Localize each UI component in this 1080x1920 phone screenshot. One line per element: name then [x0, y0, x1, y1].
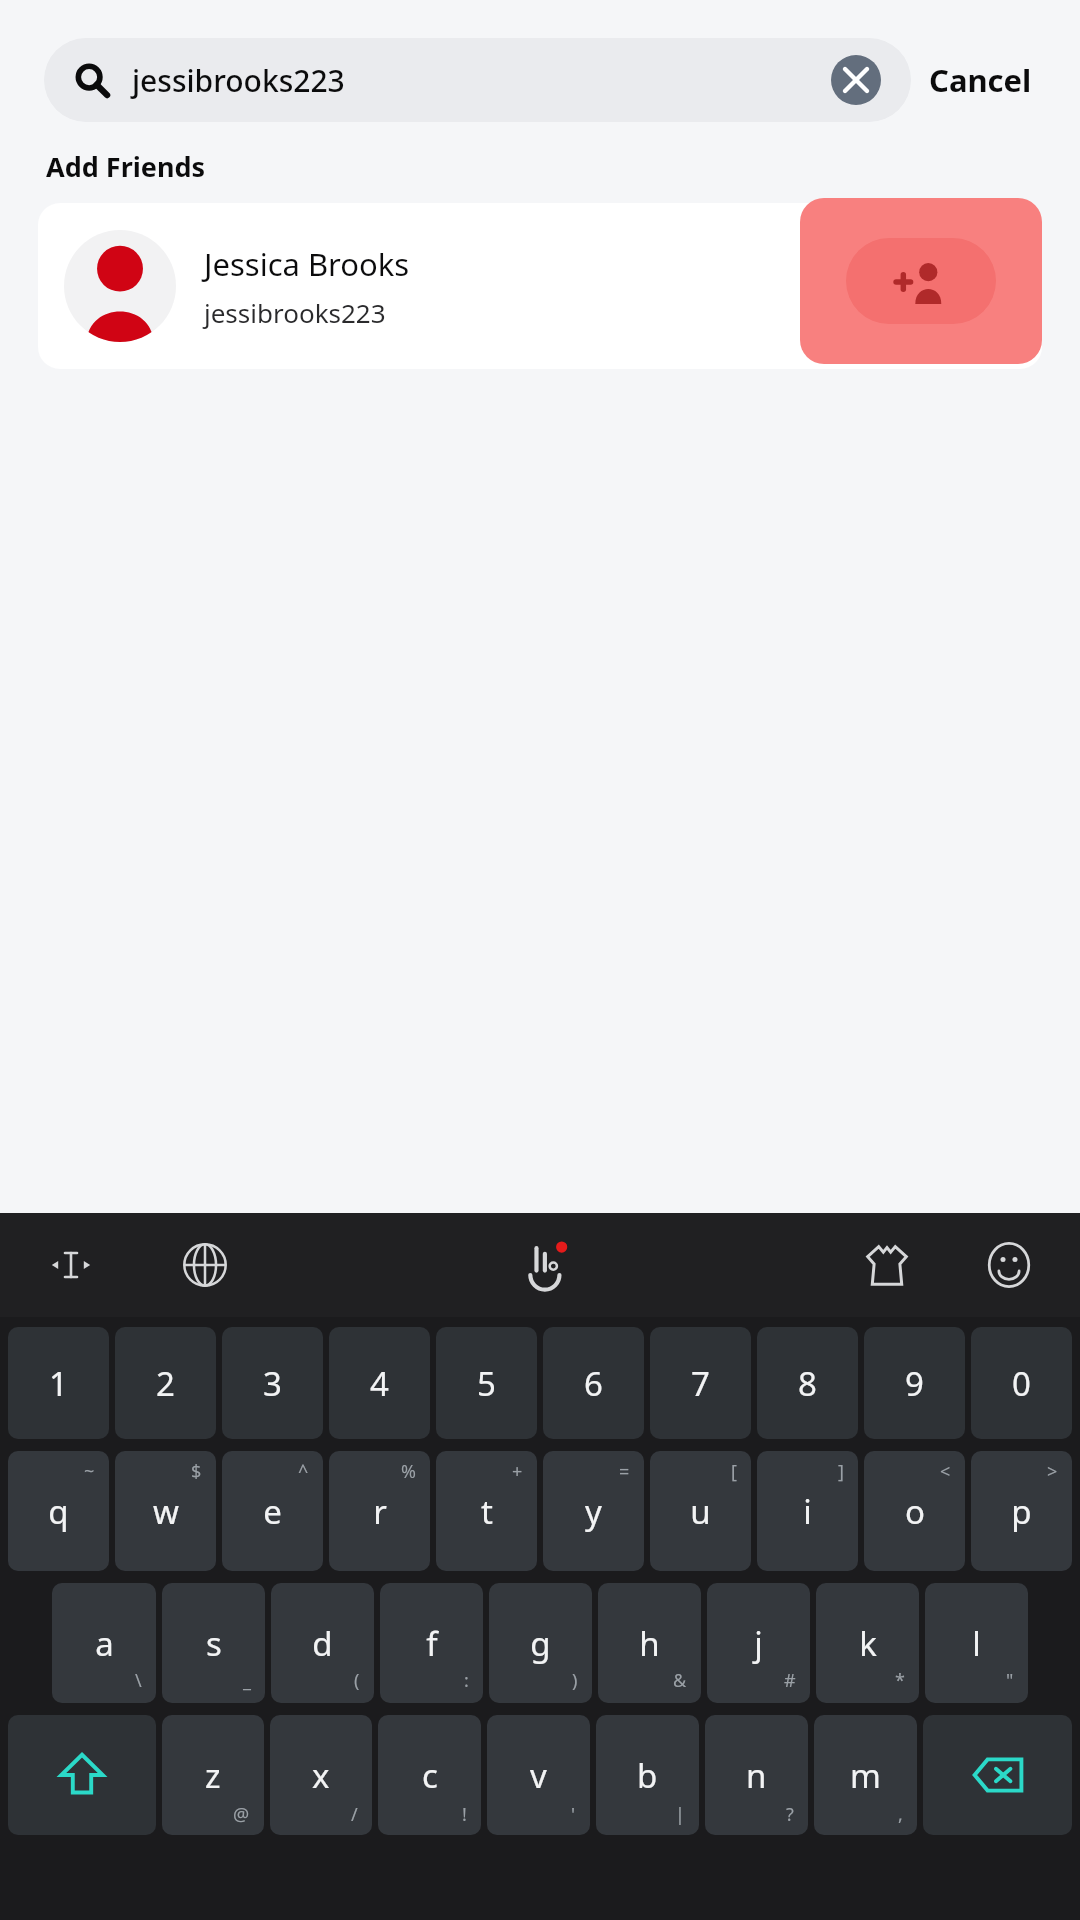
- staticText: ": [1006, 1668, 1014, 1693]
- button[interactable]: Gestures: [509, 1228, 583, 1302]
- staticText: /: [351, 1802, 358, 1827]
- staticText: 6: [584, 1361, 603, 1406]
- staticText: jessibrooks223: [132, 60, 831, 101]
- staticText: 9: [905, 1361, 924, 1406]
- button[interactable]: Backspace: [923, 1715, 1072, 1835]
- button[interactable]: q: [8, 1451, 109, 1571]
- button[interactable]: 7: [650, 1327, 751, 1439]
- staticText: *: [895, 1668, 905, 1693]
- button[interactable]: Emoji: [972, 1228, 1046, 1302]
- staticText: ?: [786, 1802, 794, 1827]
- staticText: 4: [370, 1361, 389, 1406]
- button[interactable]: Language: [168, 1228, 242, 1302]
- staticText: z: [205, 1753, 221, 1798]
- button[interactable]: k: [816, 1583, 919, 1703]
- button[interactable]: 9: [864, 1327, 965, 1439]
- staticText: jessibrooks223: [204, 295, 386, 330]
- button[interactable]: 2: [115, 1327, 216, 1439]
- button[interactable]: o: [864, 1451, 965, 1571]
- button[interactable]: x: [270, 1715, 372, 1835]
- staticText: g: [530, 1621, 551, 1666]
- staticText: m: [850, 1753, 881, 1798]
- button[interactable]: Cursor control: [34, 1228, 108, 1302]
- button[interactable]: t: [436, 1451, 537, 1571]
- button[interactable]: 0: [971, 1327, 1072, 1439]
- staticText: r: [373, 1489, 387, 1534]
- button[interactable]: u: [650, 1451, 751, 1571]
- staticText: :: [464, 1668, 469, 1693]
- button[interactable]: Shift: [8, 1715, 156, 1835]
- staticText: &: [673, 1668, 687, 1693]
- button[interactable]: m: [814, 1715, 917, 1835]
- button[interactable]: f: [380, 1583, 483, 1703]
- button[interactable]: z: [162, 1715, 264, 1835]
- staticText: f: [426, 1621, 438, 1666]
- staticText: 2: [156, 1361, 175, 1406]
- staticText: ): [572, 1668, 578, 1693]
- button[interactable]: s: [162, 1583, 265, 1703]
- button[interactable]: g: [489, 1583, 592, 1703]
- button[interactable]: v: [487, 1715, 590, 1835]
- staticText: (: [354, 1668, 360, 1693]
- button[interactable]: Cancel: [911, 47, 1050, 113]
- button[interactable]: j: [707, 1583, 810, 1703]
- staticText: Add Friends: [46, 148, 206, 185]
- staticText: Jessica Brooks: [204, 243, 410, 285]
- staticText: @: [233, 1802, 250, 1827]
- button[interactable]: h: [598, 1583, 701, 1703]
- staticText: b: [637, 1753, 658, 1798]
- button[interactable]: Add friend: [800, 198, 1042, 364]
- staticText: l: [972, 1621, 981, 1666]
- staticText: c: [422, 1753, 438, 1798]
- button[interactable]: c: [378, 1715, 481, 1835]
- staticText: d: [312, 1621, 333, 1666]
- staticText: j: [754, 1621, 763, 1666]
- staticText: |: [675, 1802, 685, 1827]
- staticText: x: [312, 1753, 330, 1798]
- staticText: w: [153, 1489, 179, 1534]
- staticText: e: [263, 1489, 282, 1534]
- staticText: _: [243, 1668, 251, 1693]
- button[interactable]: 1: [8, 1327, 109, 1439]
- staticText: k: [859, 1621, 877, 1666]
- button[interactable]: r: [329, 1451, 430, 1571]
- staticText: ~: [84, 1459, 95, 1484]
- button[interactable]: e: [222, 1451, 323, 1571]
- staticText: o: [905, 1489, 925, 1534]
- staticText: u: [690, 1489, 711, 1534]
- staticText: i: [803, 1489, 812, 1534]
- staticText: ,: [898, 1802, 903, 1827]
- staticText: $: [191, 1459, 202, 1484]
- staticText: 7: [691, 1361, 710, 1406]
- button[interactable]: n: [705, 1715, 808, 1835]
- staticText: ^: [298, 1459, 309, 1484]
- button[interactable]: 5: [436, 1327, 537, 1439]
- button[interactable]: y: [543, 1451, 644, 1571]
- button[interactable]: Clear search: [831, 55, 881, 105]
- staticText: 0: [1012, 1361, 1031, 1406]
- staticText: h: [639, 1621, 660, 1666]
- button[interactable]: p: [971, 1451, 1072, 1571]
- staticText: a: [95, 1621, 114, 1666]
- button[interactable]: Themes: [850, 1228, 924, 1302]
- button[interactable]: i: [757, 1451, 858, 1571]
- staticText: >: [1047, 1459, 1058, 1484]
- button[interactable]: b: [596, 1715, 699, 1835]
- button[interactable]: a: [52, 1583, 156, 1703]
- staticText: ]: [838, 1459, 844, 1484]
- button[interactable]: w: [115, 1451, 216, 1571]
- staticText: n: [746, 1753, 767, 1798]
- button[interactable]: Jessica Brooks: [38, 203, 1042, 369]
- staticText: v: [530, 1753, 547, 1798]
- button[interactable]: 3: [222, 1327, 323, 1439]
- button[interactable]: 6: [543, 1327, 644, 1439]
- button[interactable]: l: [925, 1583, 1028, 1703]
- staticText: t: [481, 1489, 493, 1534]
- button[interactable]: jessibrooks223: [44, 38, 911, 122]
- staticText: s: [206, 1621, 222, 1666]
- button[interactable]: 8: [757, 1327, 858, 1439]
- staticText: <: [940, 1459, 951, 1484]
- button[interactable]: 4: [329, 1327, 430, 1439]
- staticText: +: [512, 1459, 523, 1484]
- button[interactable]: d: [271, 1583, 374, 1703]
